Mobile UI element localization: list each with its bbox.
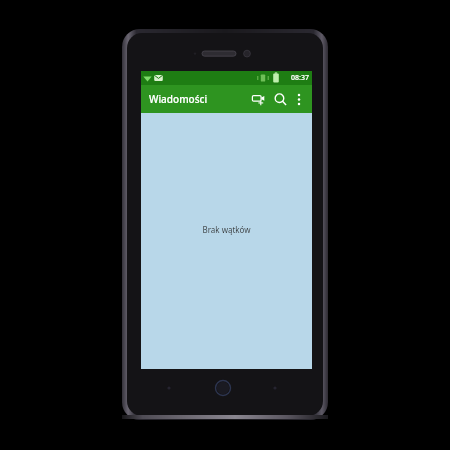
staticText: Brak wątków (202, 224, 251, 235)
staticText: 08:37 (291, 73, 309, 83)
staticText: Wiadomości (149, 92, 208, 106)
button[interactable]: Search (269, 85, 291, 113)
button[interactable]: New message (247, 85, 269, 113)
button[interactable]: More options (291, 85, 307, 113)
